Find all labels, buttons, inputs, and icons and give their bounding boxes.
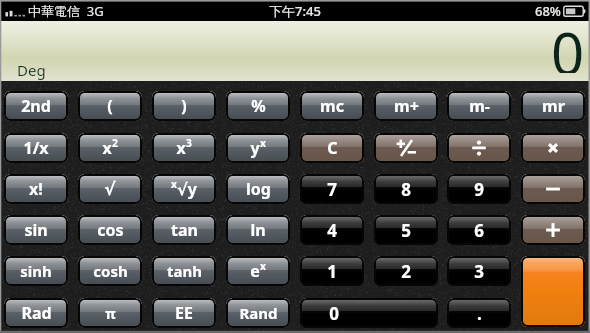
staticText: % [251,95,266,117]
button[interactable]: mc [300,91,364,121]
button[interactable]: Rad [4,298,68,328]
staticText: 下午7:45 [269,2,321,20]
staticText: 3 [186,136,192,150]
button[interactable]: Divide [447,133,511,163]
button[interactable]: Minus [521,174,585,204]
staticText: π [105,304,116,323]
staticText: 3 [474,260,484,283]
staticText: √y [177,178,197,200]
button[interactable]: Plus minus [374,133,438,163]
button[interactable]: ( [78,91,142,121]
staticText: 1/x [23,137,49,159]
staticText: 0 [329,302,339,325]
button[interactable]: Equals [521,256,585,327]
staticText: sinh [20,261,52,281]
staticText: ) [181,95,187,117]
staticText: 6 [474,219,484,242]
button[interactable]: ln [226,215,290,245]
button[interactable]: mr [521,91,585,121]
button[interactable]: x [78,133,142,163]
button[interactable]: tanh [152,256,216,286]
staticText: x [171,177,177,191]
button[interactable]: cos [78,215,142,245]
staticText: Rad [21,302,52,324]
staticText: 2nd [21,95,51,117]
staticText: x [176,137,186,159]
button[interactable]: x! [4,174,68,204]
staticText: 2 [401,260,411,283]
staticText: 5 [401,219,411,242]
staticText: m- [469,95,490,117]
button[interactable]: 0 [300,298,438,328]
staticText: cosh [93,261,128,281]
button[interactable]: cosh [78,256,142,286]
staticText: x [260,136,266,150]
button[interactable]: Plus [521,215,585,245]
button[interactable]: x [152,174,216,204]
button[interactable]: log [226,174,290,204]
staticText: y [250,137,260,159]
button[interactable]: y [226,133,290,163]
staticText: x [102,137,112,159]
staticText: ( [107,95,113,117]
staticText: x! [29,178,43,200]
button[interactable]: 4 [300,215,364,245]
staticText: 1 [327,260,337,283]
staticText: Deg [17,60,46,80]
button[interactable]: 3 [447,256,511,286]
staticText: 2 [112,136,118,150]
button[interactable]: 1/x [4,133,68,163]
button[interactable]: sin [4,215,68,245]
staticText: log [246,178,271,200]
staticText: mc [320,95,344,117]
button[interactable]: EE [152,298,216,328]
button[interactable]: Rand [226,298,290,328]
staticText: 4 [327,219,337,242]
button[interactable]: ) [152,91,216,121]
staticText: e [250,260,260,282]
button[interactable]: C [300,133,364,163]
button[interactable]: √ [78,174,142,204]
staticText: EE [175,302,193,324]
staticText: tan [171,219,198,241]
button[interactable]: m- [447,91,511,121]
staticText: 中華電信 3G [28,2,104,20]
button[interactable]: . [447,298,511,328]
staticText: 8 [401,178,411,201]
staticText: √ [104,179,116,199]
staticText: 9 [474,178,484,201]
button[interactable]: 2 [374,256,438,286]
staticText: ln [250,219,266,241]
staticText: tanh [167,261,202,281]
staticText: 68% [535,2,561,20]
staticText: x [260,259,266,273]
button[interactable]: 6 [447,215,511,245]
staticText: cos [97,219,124,241]
staticText: mr [542,95,565,117]
button[interactable]: 2nd [4,91,68,121]
staticText: . [477,302,482,325]
button[interactable]: % [226,91,290,121]
button[interactable]: 1 [300,256,364,286]
button[interactable]: sinh [4,256,68,286]
staticText: m+ [394,95,419,117]
staticText: 0 [551,13,585,73]
button[interactable]: 9 [447,174,511,204]
button[interactable]: 8 [374,174,438,204]
button[interactable]: e [226,256,290,286]
staticText: 7 [327,178,337,201]
staticText: sin [24,219,48,241]
button[interactable]: x [152,133,216,163]
button[interactable]: Multiply [521,133,585,163]
button[interactable]: tan [152,215,216,245]
staticText: C [327,137,338,159]
button[interactable]: 5 [374,215,438,245]
button[interactable]: m+ [374,91,438,121]
button[interactable]: π [78,298,142,328]
staticText: Rand [239,303,278,323]
button[interactable]: 7 [300,174,364,204]
